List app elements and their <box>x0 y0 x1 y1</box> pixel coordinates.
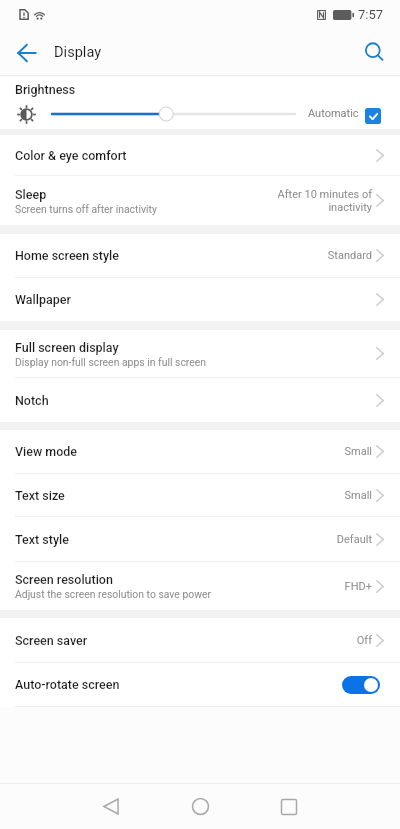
button[interactable]: Back <box>3 30 49 76</box>
staticText: Text style <box>15 532 69 547</box>
button[interactable]: Recent apps <box>265 784 313 829</box>
button[interactable]: Home screen style <box>0 234 400 277</box>
button[interactable]: Color & eye comfort <box>0 135 400 175</box>
staticText: Brightness <box>15 82 76 97</box>
staticText: Sleep <box>15 187 47 202</box>
staticText: Small <box>344 445 372 458</box>
staticText: Screen resolution <box>15 572 113 587</box>
staticText: View mode <box>15 444 78 459</box>
staticText: Automatic <box>308 107 359 120</box>
button[interactable]: Text style <box>0 517 400 561</box>
staticText: Small <box>344 489 372 502</box>
staticText: Auto-rotate screen <box>15 677 342 692</box>
staticText: After 10 minutes of inactivity <box>277 188 372 214</box>
button[interactable]: Full screen display <box>0 330 400 377</box>
staticText: Adjust the screen resolution to save pow… <box>15 588 212 600</box>
button[interactable]: Search <box>351 29 397 75</box>
staticText: Screen turns off after inactivity <box>15 203 157 215</box>
staticText: Color & eye comfort <box>15 148 127 163</box>
staticText: Text size <box>15 488 65 503</box>
button[interactable]: Screen resolution <box>0 562 400 610</box>
staticText: Display non-full screen apps in full scr… <box>15 356 207 368</box>
button[interactable]: Notch <box>0 378 400 422</box>
staticText: Display <box>54 43 102 60</box>
button[interactable]: Sleep <box>0 176 400 225</box>
staticText: Default <box>336 533 372 546</box>
staticText: FHD+ <box>344 580 372 593</box>
staticText: Notch <box>15 393 49 408</box>
button[interactable]: Text size <box>0 474 400 516</box>
staticText: Standard <box>327 249 372 262</box>
button[interactable]: Screen saver <box>0 618 400 662</box>
button[interactable]: Wallpaper <box>0 278 400 321</box>
button[interactable]: Home <box>176 784 224 829</box>
staticText: Off <box>356 634 372 647</box>
staticText: 7:57 <box>358 7 384 22</box>
button[interactable]: Back <box>87 784 135 829</box>
button[interactable]: Automatic brightness <box>365 108 381 124</box>
staticText: Wallpaper <box>15 292 71 307</box>
staticText: Screen saver <box>15 633 88 648</box>
staticText: Full screen display <box>15 340 119 355</box>
button[interactable]: Auto-rotate screen <box>0 663 400 706</box>
button[interactable]: View mode <box>0 430 400 473</box>
staticText: Home screen style <box>15 248 119 263</box>
